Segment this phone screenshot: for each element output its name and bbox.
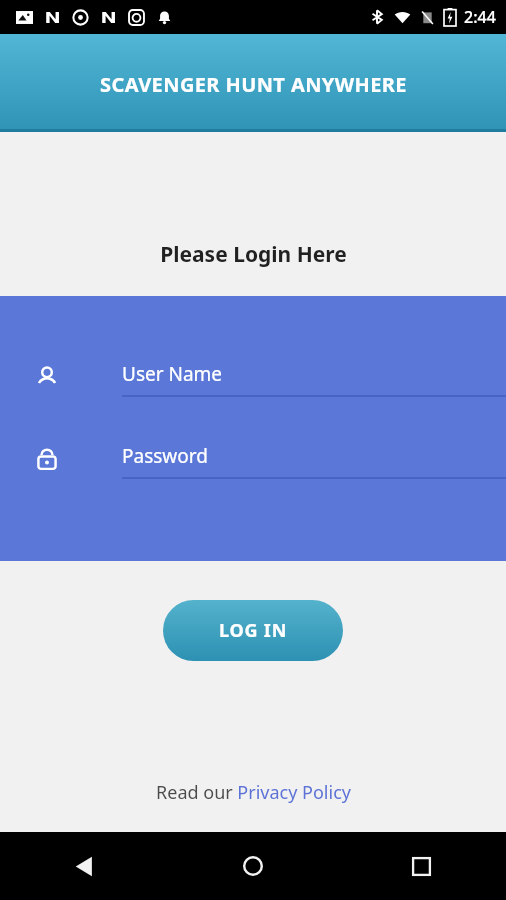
button[interactable]: LOG IN: [163, 600, 343, 661]
button[interactable]: Password: [0, 442, 506, 487]
staticText: LOG IN: [219, 618, 288, 643]
staticText: Password: [122, 443, 208, 469]
staticText: User Name: [122, 361, 223, 387]
staticText: 2:44: [464, 6, 496, 28]
button[interactable]: User Name: [0, 360, 506, 405]
button[interactable]: Home: [168, 832, 337, 900]
button[interactable]: Back: [0, 832, 168, 900]
button[interactable]: Recent apps: [337, 832, 506, 900]
staticText: SCAVENGER HUNT ANYWHERE: [100, 71, 407, 98]
staticText: Read our Privacy Policy: [156, 780, 351, 805]
staticText: Please Login Here: [160, 240, 347, 269]
button[interactable]: Read our Privacy Policy: [156, 780, 351, 805]
